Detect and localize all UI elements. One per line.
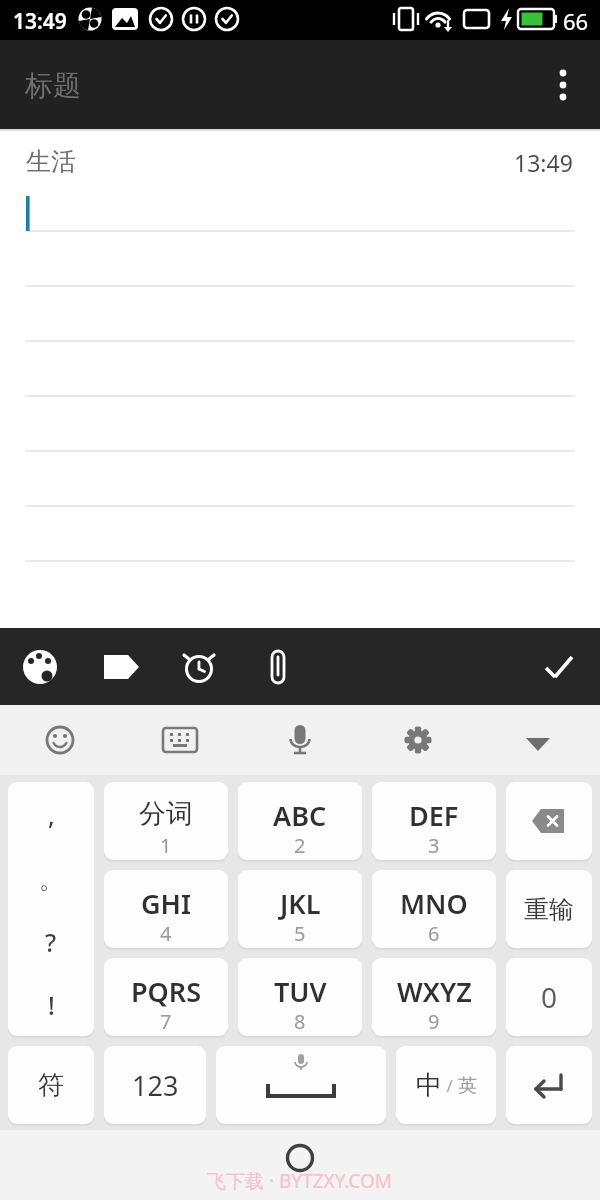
staticText: 6 [428, 920, 440, 947]
staticText: WXYZ [397, 973, 472, 1010]
button[interactable]: DEF [372, 782, 496, 860]
button[interactable] [216, 1046, 386, 1124]
staticText: 0 [541, 978, 558, 1016]
button[interactable] [38, 718, 82, 762]
button[interactable]: 分词 [104, 782, 228, 860]
staticText: 中 [416, 1069, 442, 1102]
staticText: ! [48, 988, 55, 1022]
staticText: 1 [160, 832, 172, 859]
button[interactable]: GHI [104, 870, 228, 948]
staticText: 5 [294, 920, 306, 947]
staticText: 。 [39, 864, 64, 895]
staticText: 标题 [25, 68, 81, 103]
button[interactable] [506, 782, 592, 860]
button[interactable] [516, 718, 560, 762]
staticText: PQRS [131, 973, 202, 1010]
staticText: 3 [428, 832, 440, 859]
button[interactable]: TUV [238, 958, 362, 1036]
staticText: GHI [141, 885, 192, 922]
staticText: 66 [563, 6, 589, 36]
button[interactable]: ABC [238, 782, 362, 860]
staticText: 7 [160, 1008, 172, 1035]
staticText: ? [45, 925, 57, 959]
button[interactable] [99, 645, 143, 689]
button[interactable] [278, 718, 322, 762]
button[interactable]: WXYZ [372, 958, 496, 1036]
button[interactable] [18, 645, 62, 689]
staticText: 英 [458, 1074, 477, 1098]
button[interactable] [544, 50, 600, 120]
button[interactable] [177, 645, 221, 689]
staticText: 13:49 [514, 147, 573, 178]
staticText: 123 [132, 1067, 179, 1104]
button[interactable]: MNO [372, 870, 496, 948]
button[interactable] [537, 645, 581, 689]
staticText: , [48, 798, 55, 832]
staticText: 9 [428, 1008, 440, 1035]
staticText: MNO [400, 885, 468, 922]
button[interactable] [506, 1046, 592, 1124]
button[interactable] [158, 718, 202, 762]
staticText: 重输 [524, 894, 574, 925]
button[interactable]: 标题 [10, 50, 450, 120]
staticText: DEF [409, 797, 459, 834]
button[interactable]: PQRS [104, 958, 228, 1036]
staticText: 飞下载 · BYTZXY.COM [207, 1168, 393, 1194]
button[interactable]: 0 [506, 958, 592, 1036]
staticText: 2 [294, 832, 306, 859]
button[interactable]: 符 [8, 1046, 94, 1124]
staticText: 分词 [139, 797, 193, 831]
staticText: JKL [280, 885, 321, 922]
staticText: 4 [160, 920, 172, 947]
staticText: ABC [273, 797, 327, 834]
staticText: TUV [274, 973, 327, 1010]
button[interactable]: 重输 [506, 870, 592, 948]
button[interactable]: 123 [104, 1046, 206, 1124]
button[interactable]: , [8, 782, 94, 1036]
button[interactable] [256, 645, 300, 689]
button[interactable]: 中 [396, 1046, 496, 1124]
button[interactable] [396, 718, 440, 762]
staticText: 符 [38, 1069, 64, 1102]
staticText: 8 [294, 1008, 306, 1035]
button[interactable] [285, 1143, 315, 1173]
staticText: / [442, 1074, 458, 1097]
button[interactable]: JKL [238, 870, 362, 948]
staticText: 13:49 [13, 7, 67, 36]
staticText: 生活 [26, 146, 76, 177]
